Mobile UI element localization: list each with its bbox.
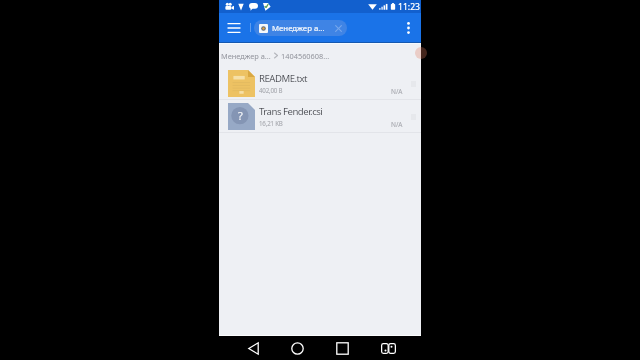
staticText: Trans Fender.csi: [259, 105, 323, 118]
button[interactable]: Select item: [407, 78, 419, 90]
staticText: 11:23: [398, 1, 420, 13]
staticText: 1404560608...: [281, 51, 330, 61]
button[interactable]: ?: [219, 100, 421, 132]
button[interactable]: Split screen: [378, 338, 398, 358]
staticText: ?: [238, 108, 243, 123]
button[interactable]: README.txt: [219, 67, 421, 99]
button[interactable]: Home: [287, 338, 307, 358]
staticText: Менеджер а...: [221, 51, 271, 61]
button[interactable]: More options: [398, 18, 418, 38]
button[interactable]: Recent apps: [332, 338, 352, 358]
staticText: N/A: [391, 87, 403, 96]
button[interactable]: Менеджер а...: [254, 20, 347, 36]
button[interactable]: Open navigation drawer: [223, 17, 245, 39]
staticText: 16,21 KB: [259, 119, 283, 127]
button[interactable]: Back: [243, 338, 263, 358]
staticText: 402,00 B: [259, 86, 283, 94]
staticText: N/A: [391, 120, 403, 129]
staticText: Менеджер а...: [272, 23, 325, 34]
button[interactable]: Select item: [407, 111, 419, 123]
staticText: README.txt: [259, 72, 308, 85]
